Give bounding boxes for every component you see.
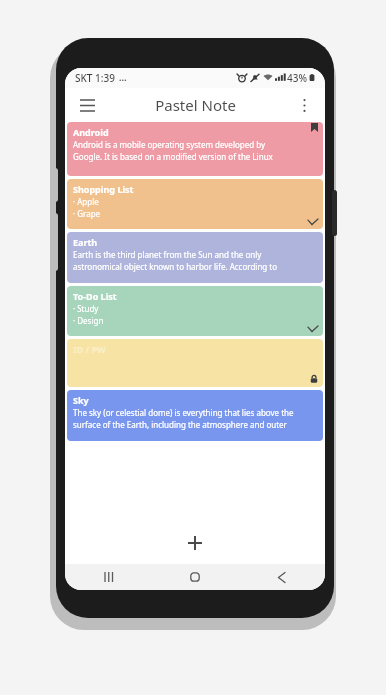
staticText: The sky (or celestial dome) is everythin… <box>73 407 294 418</box>
staticText: Android is a mobile operating system dev… <box>73 139 266 150</box>
button[interactable]: Sky <box>67 390 323 441</box>
staticText: Earth is the third planet from the Sun a… <box>73 249 262 260</box>
button[interactable]: To-Do List <box>67 286 323 336</box>
button[interactable]: Add note <box>180 528 210 558</box>
button[interactable]: Back <box>238 564 325 590</box>
staticText: surface of the Earth, including the atmo… <box>73 419 287 430</box>
staticText: ID / PW <box>73 343 106 355</box>
button[interactable]: Home <box>151 564 238 590</box>
button[interactable]: ID / PW <box>67 339 323 387</box>
staticText: · Design <box>73 315 104 326</box>
staticText: · Apple <box>73 196 99 207</box>
button[interactable]: More options <box>289 90 319 120</box>
staticText: Pastel Note <box>155 95 236 115</box>
staticText: Earth <box>73 236 98 248</box>
button[interactable]: Android <box>67 122 323 176</box>
staticText: SKT 1:39 <box>75 71 115 85</box>
staticText: Android <box>73 126 109 138</box>
button[interactable]: Menu <box>71 89 103 121</box>
staticText: · Grape <box>73 208 101 219</box>
staticText: 43% <box>287 71 307 85</box>
staticText: Sky <box>73 394 89 406</box>
button[interactable]: Shopping List <box>67 179 323 229</box>
button[interactable]: Earth <box>67 232 323 283</box>
staticText: To-Do List <box>73 290 117 302</box>
staticText: astronomical object known to harbor life… <box>73 261 278 272</box>
staticText: Shopping List <box>73 183 134 195</box>
staticText: Google. It is based on a modified versio… <box>73 151 273 162</box>
button[interactable]: Recents <box>65 564 151 590</box>
staticText: · Study <box>73 303 99 314</box>
